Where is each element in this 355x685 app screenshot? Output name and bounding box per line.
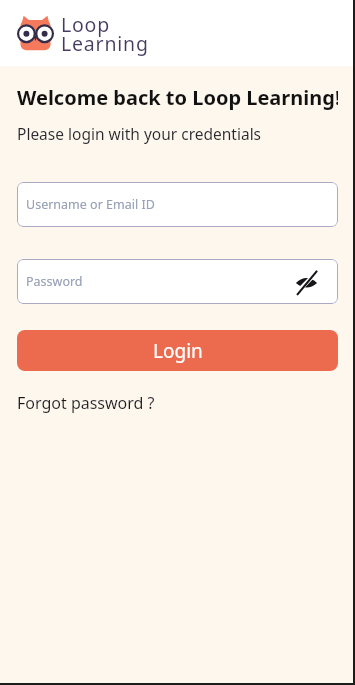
staticText: Welcome back to Loop Learning!: [17, 84, 338, 111]
button[interactable]: Username or Email ID: [17, 182, 338, 227]
staticText: Please login with your credentials: [17, 123, 262, 144]
button[interactable]: Password: [17, 259, 338, 304]
staticText: Username or Email ID: [26, 196, 155, 213]
button[interactable]: Login: [17, 330, 338, 371]
staticText: Login: [153, 338, 203, 364]
staticText: Password: [26, 273, 83, 290]
staticText: Loop Learning: [61, 11, 149, 57]
button[interactable]: Forgot password ?: [17, 392, 155, 414]
